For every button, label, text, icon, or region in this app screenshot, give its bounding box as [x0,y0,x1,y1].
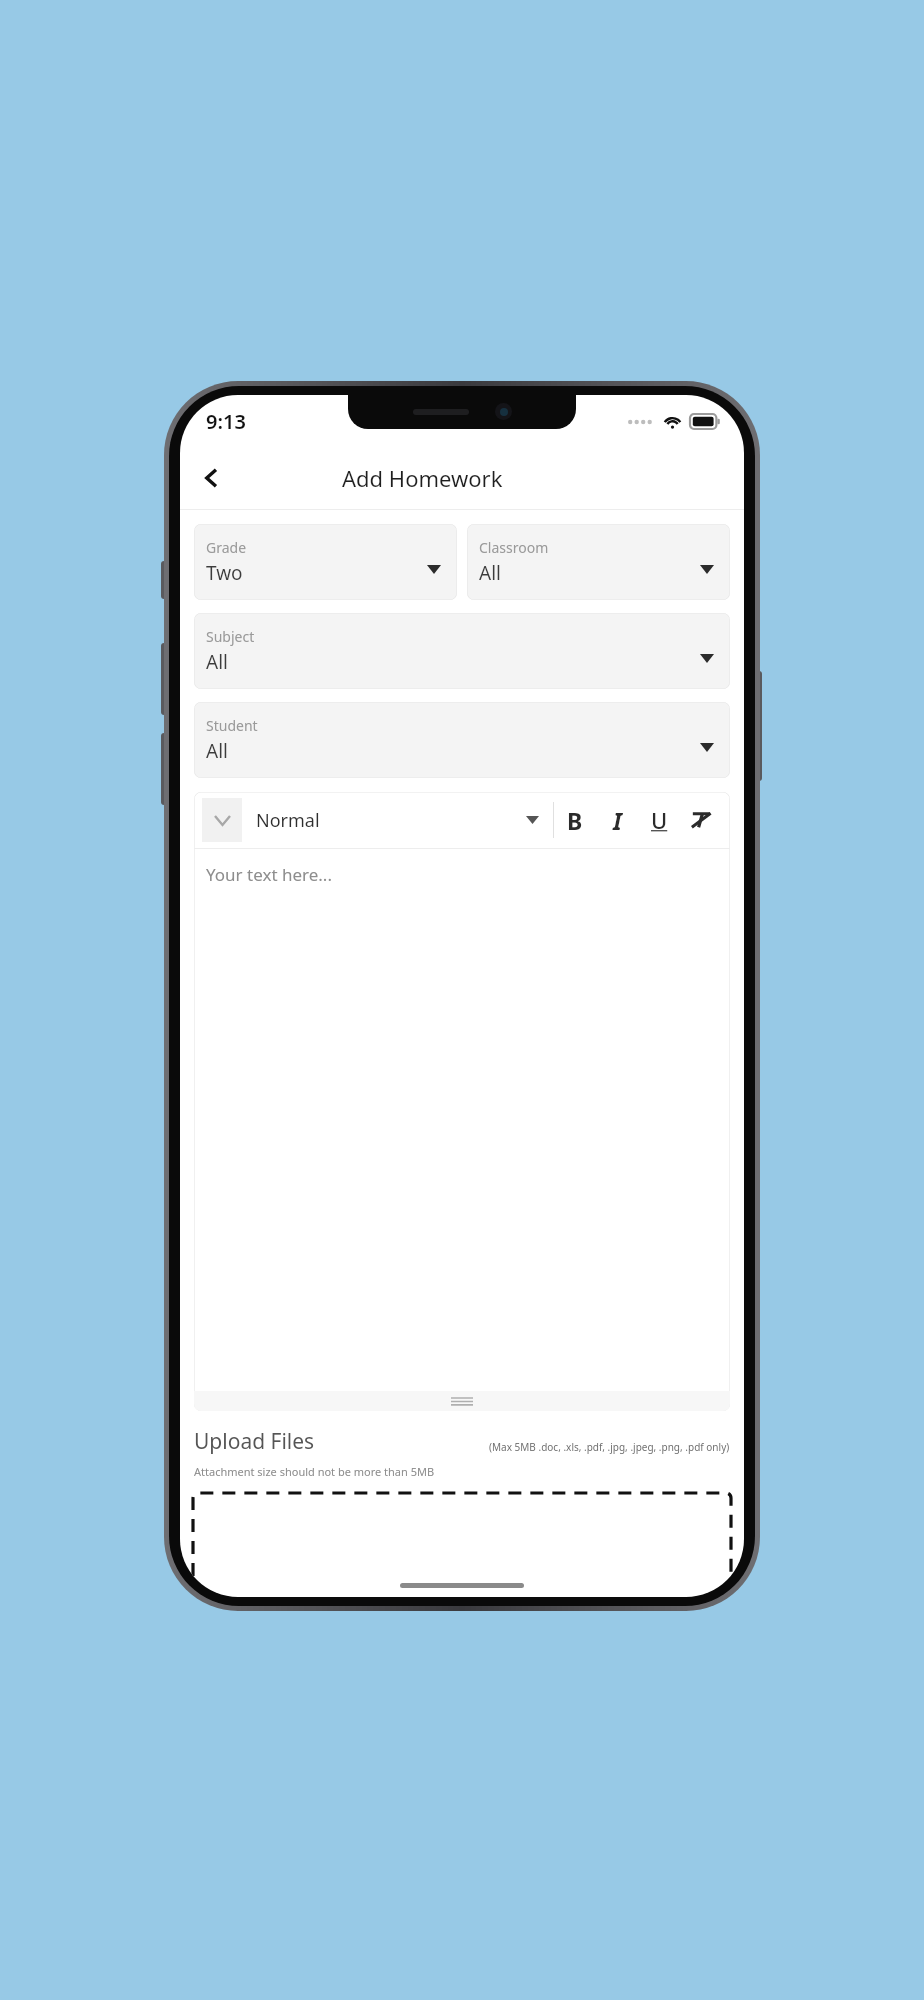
staticText: Attachment size should not be more than … [194,1464,435,1479]
button[interactable]: Subject [194,613,730,689]
staticText: Add Homework [342,463,503,493]
button[interactable]: Italic [596,798,638,842]
staticText: (Max 5MB .doc, .xls, .pdf, .jpg, .jpeg, … [489,1440,730,1454]
staticText: Grade [206,538,247,557]
staticText: Your text here... [206,863,332,886]
staticText: All [206,738,228,764]
staticText: Subject [206,627,255,646]
button[interactable]: Normal [242,792,553,848]
button[interactable]: Classroom [467,524,730,600]
staticText: Two [206,560,243,586]
staticText: 9:13 [206,408,246,435]
staticText: Normal [256,808,320,833]
staticText: All [479,560,501,586]
button[interactable]: Back [188,454,236,502]
staticText: I [613,805,622,836]
button[interactable]: Expand toolbar [202,798,242,842]
button[interactable]: Student [194,702,730,778]
staticText: B [567,805,583,836]
staticText: Student [206,716,258,735]
button[interactable]: Grade [194,524,457,600]
staticText: Upload Files [194,1427,315,1456]
button[interactable]: Underline [638,798,680,842]
staticText: Classroom [479,538,549,557]
button[interactable]: Upload files drop zone [193,1493,731,1573]
staticText: All [206,649,228,675]
button[interactable]: Bold [554,798,596,842]
button[interactable]: Clear formatting [680,798,722,842]
staticText: U [651,805,668,835]
